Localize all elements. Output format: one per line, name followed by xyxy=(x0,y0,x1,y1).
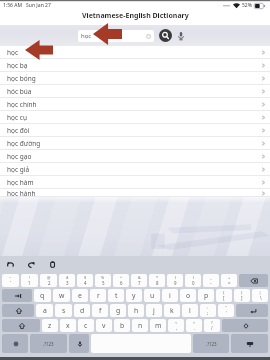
button[interactable]: học hàm xyxy=(0,176,270,189)
button[interactable]: a xyxy=(36,304,53,317)
staticText: 8 xyxy=(156,280,159,286)
staticText: ) xyxy=(193,275,195,280)
button[interactable]: Redo xyxy=(26,259,37,270)
button[interactable]: Voice search xyxy=(175,30,186,41)
button[interactable]: ! xyxy=(21,274,38,287)
staticText: e xyxy=(78,291,82,300)
button[interactable]: .?123 xyxy=(193,334,229,353)
button[interactable]: d xyxy=(74,304,90,317)
staticText: .?123 xyxy=(43,341,54,347)
staticText: x xyxy=(66,321,70,330)
button[interactable]: s xyxy=(55,304,72,317)
button[interactable]: ? xyxy=(204,319,220,332)
button[interactable]: học xyxy=(78,30,154,42)
staticText: k xyxy=(170,306,174,315)
button[interactable]: $ xyxy=(77,274,93,287)
button[interactable]: học xyxy=(0,46,270,59)
button[interactable]: v xyxy=(96,319,112,332)
button[interactable]: { xyxy=(216,289,232,302)
staticText: p xyxy=(204,291,209,300)
button[interactable]: b xyxy=(114,319,130,332)
button[interactable]: ~ xyxy=(2,274,19,287)
button[interactable]: q xyxy=(34,289,51,302)
button[interactable]: ^ xyxy=(113,274,129,287)
button[interactable]: k xyxy=(164,304,180,317)
button[interactable]: Tab xyxy=(2,289,32,302)
button[interactable]: Undo xyxy=(5,259,16,270)
button[interactable]: o xyxy=(180,289,196,302)
button[interactable]: & xyxy=(131,274,147,287)
button[interactable]: < xyxy=(168,319,184,332)
button[interactable]: học đường xyxy=(0,137,270,150)
button[interactable]: p xyxy=(198,289,214,302)
staticText: } xyxy=(241,290,243,295)
staticText: học cụ xyxy=(7,113,27,122)
button[interactable]: : xyxy=(200,304,216,317)
button[interactable]: học cụ xyxy=(0,111,270,124)
button[interactable]: n xyxy=(132,319,148,332)
button[interactable]: Dictate xyxy=(69,334,89,353)
button[interactable]: f xyxy=(92,304,108,317)
staticText: o xyxy=(186,291,191,300)
button[interactable]: w xyxy=(53,289,70,302)
button[interactable]: học bạ xyxy=(0,59,270,72)
button[interactable]: | xyxy=(252,289,268,302)
staticText: \ xyxy=(260,295,262,301)
button[interactable]: h xyxy=(128,304,144,317)
button[interactable]: Shift xyxy=(2,319,40,332)
button[interactable]: ) xyxy=(185,274,201,287)
button[interactable]: Search xyxy=(159,29,172,42)
button[interactable]: _ xyxy=(203,274,219,287)
button[interactable]: g xyxy=(110,304,126,317)
button[interactable]: học đòi xyxy=(0,124,270,137)
staticText: @ xyxy=(47,275,51,280)
button[interactable]: + xyxy=(221,274,237,287)
button[interactable]: @ xyxy=(40,274,57,287)
button[interactable]: Change language xyxy=(2,334,28,353)
button[interactable]: Return xyxy=(236,304,268,317)
button[interactable]: Backspace xyxy=(239,274,268,287)
button[interactable]: Hide keyboard xyxy=(231,334,268,353)
button[interactable]: j xyxy=(146,304,162,317)
button[interactable]: * xyxy=(149,274,165,287)
button[interactable]: Shift xyxy=(2,304,34,317)
other: Return xyxy=(248,306,257,315)
button[interactable]: học giả xyxy=(0,163,270,176)
button[interactable]: m xyxy=(150,319,166,332)
staticText: l xyxy=(189,306,191,315)
button[interactable]: r xyxy=(90,289,106,302)
button[interactable]: Paste xyxy=(47,259,58,270)
staticText: học hành xyxy=(7,189,36,197)
staticText: ^ xyxy=(120,275,123,280)
staticText: học đường xyxy=(7,139,41,148)
button[interactable]: hóc búa xyxy=(0,85,270,98)
button[interactable]: học chính xyxy=(0,98,270,111)
staticText: hóc búa xyxy=(7,87,32,96)
button[interactable]: Symbols xyxy=(222,319,268,332)
button[interactable]: e xyxy=(72,289,88,302)
button[interactable]: học bổng xyxy=(0,72,270,85)
button[interactable]: # xyxy=(59,274,75,287)
button[interactable]: " xyxy=(218,304,234,317)
button[interactable]: .?123 xyxy=(30,334,67,353)
button[interactable]: u xyxy=(144,289,160,302)
button[interactable]: z xyxy=(42,319,58,332)
button[interactable]: x xyxy=(60,319,76,332)
button[interactable]: > xyxy=(186,319,202,332)
other: Shift xyxy=(14,306,23,315)
staticText: ? xyxy=(211,320,213,325)
button[interactable]: c xyxy=(78,319,94,332)
staticText: u xyxy=(150,291,155,300)
staticText: z xyxy=(48,321,52,330)
button[interactable]: y xyxy=(126,289,142,302)
staticText: b xyxy=(120,321,125,330)
button[interactable]: ( xyxy=(167,274,183,287)
button[interactable]: t xyxy=(108,289,124,302)
button[interactable]: học hành xyxy=(0,189,270,197)
button[interactable]: % xyxy=(95,274,111,287)
button[interactable]: i xyxy=(162,289,178,302)
button[interactable]: } xyxy=(234,289,250,302)
button[interactable]: l xyxy=(182,304,198,317)
button[interactable]: học gạo xyxy=(0,150,270,163)
